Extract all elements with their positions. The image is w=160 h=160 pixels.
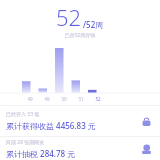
other: Total tax detail (138, 141, 154, 157)
staticText: 51 (78, 96, 84, 102)
other: Total earnings detail (138, 113, 154, 129)
staticText: 已经存入 33 笔 (6, 111, 40, 118)
staticText: /52周 (83, 19, 104, 30)
staticText: 49 (27, 96, 33, 102)
button[interactable]: 目前 29 张期限金 (0, 137, 160, 160)
staticText: 目前 29 张期限金 (6, 139, 45, 146)
staticText: 49 (44, 96, 50, 102)
staticText: 累计抽税 284.78 元 (6, 148, 76, 159)
staticText: 52 (95, 96, 101, 102)
staticText: 已存52周存钱 (0, 32, 160, 39)
staticText: 50 (61, 96, 67, 102)
button[interactable]: 已经存入 33 笔 (0, 106, 160, 136)
staticText: 52 (56, 2, 82, 32)
staticText: 累计获得收益 4456.83 元 (6, 120, 96, 131)
